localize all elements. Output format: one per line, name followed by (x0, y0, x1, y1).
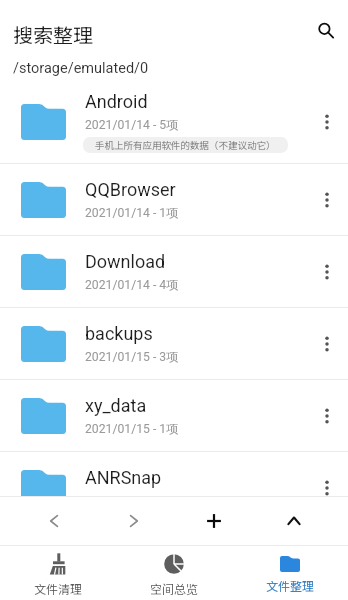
staticText: 搜索整理 (13, 20, 93, 49)
button[interactable]: backups (0, 307, 348, 379)
button[interactable]: QQBrowser (0, 163, 348, 235)
button[interactable]: Android (0, 89, 348, 163)
staticText: QQBrowser (85, 179, 176, 200)
staticText: Android (85, 91, 148, 112)
staticText: backups (85, 323, 153, 344)
staticText: 2021/01/15 - 1项 (85, 421, 179, 436)
staticText: 2021/01/14 - 5项 (85, 117, 179, 132)
button[interactable]: Download (0, 235, 348, 307)
button[interactable]: More options (306, 164, 348, 235)
staticText: 2021/01/14 - 1项 (85, 205, 179, 220)
staticText: 2021/01/15 - 3项 (85, 349, 179, 364)
button[interactable]: More options (306, 452, 348, 496)
button[interactable]: Previous (13, 496, 94, 545)
button[interactable]: ANRSnap (0, 451, 348, 496)
button[interactable]: Add (174, 496, 254, 545)
button[interactable]: More options (306, 380, 348, 451)
staticText: /storage/emulated/0 (13, 60, 149, 77)
staticText: xy_data (85, 395, 147, 416)
staticText: 文件整理 (266, 577, 315, 594)
button[interactable]: Search (308, 13, 344, 49)
staticText: 文件清理 (34, 580, 83, 597)
button[interactable]: More options (306, 308, 348, 379)
button[interactable]: More options (306, 89, 348, 163)
button[interactable]: xy_data (0, 379, 348, 451)
staticText: Download (85, 251, 166, 272)
button[interactable]: 文件整理 (232, 545, 348, 600)
button[interactable]: 空间总览 (116, 545, 232, 600)
staticText: 空间总览 (150, 580, 199, 597)
staticText: 手机上所有应用软件的数据（不建议动它） (95, 138, 276, 152)
staticText: 2021/01/14 - 4项 (85, 277, 179, 292)
staticText: ANRSnap (85, 467, 162, 488)
button[interactable]: Collapse (254, 496, 334, 545)
button[interactable]: More options (306, 236, 348, 307)
button[interactable]: 文件清理 (0, 545, 116, 600)
button[interactable]: Next (94, 496, 174, 545)
